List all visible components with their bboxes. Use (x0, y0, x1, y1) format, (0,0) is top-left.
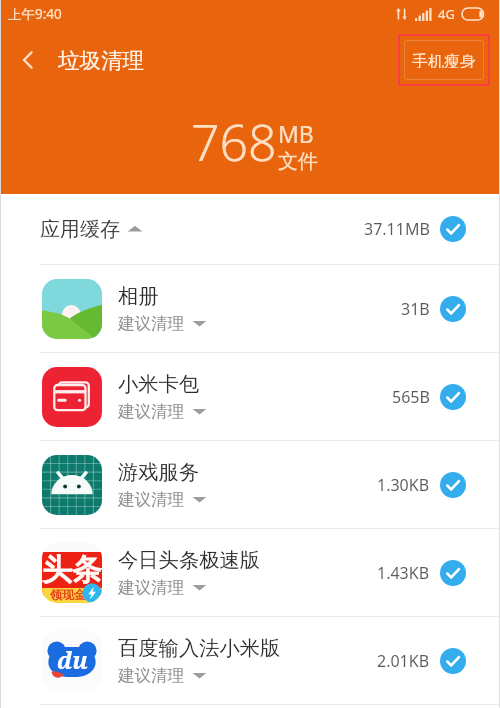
staticText: 头条 (42, 551, 102, 589)
button[interactable]: Selected, tap to deselect (440, 472, 466, 498)
staticText: 768 (191, 108, 277, 176)
staticText: 相册 (118, 283, 159, 309)
staticText: 1.43KB (377, 562, 430, 584)
staticText: 4G (438, 5, 455, 23)
staticText: 建议清理 (118, 577, 184, 598)
staticText: 小米卡包 (118, 371, 200, 397)
staticText: 文件 (278, 149, 318, 174)
staticText: du (57, 644, 88, 675)
staticText: MB (278, 118, 314, 149)
staticText: 百度输入法小米版 (118, 635, 281, 661)
staticText: 应用缓存 (40, 217, 120, 242)
button[interactable]: 应用缓存 (0, 194, 500, 264)
button[interactable]: du (0, 617, 500, 704)
button[interactable]: Back (0, 34, 56, 86)
staticText: 565B (392, 386, 430, 408)
staticText: 1.30KB (377, 474, 430, 496)
button[interactable]: Selected, tap to deselect (440, 296, 466, 322)
button[interactable]: 头条 (0, 529, 500, 616)
staticText: 建议清理 (118, 401, 184, 422)
staticText: 2.01KB (377, 650, 430, 672)
staticText: 今日头条极速版 (118, 547, 261, 573)
staticText: 37.11MB (364, 218, 430, 240)
button[interactable]: Selected, tap to deselect (440, 560, 466, 586)
button[interactable]: Selected, tap to deselect (440, 216, 466, 242)
staticText: 领现金 (50, 587, 86, 602)
staticText: 建议清理 (118, 313, 184, 334)
staticText: 游戏服务 (118, 459, 200, 485)
staticText: 上午9:40 (8, 5, 62, 23)
staticText: 建议清理 (118, 665, 184, 686)
button[interactable]: 小米卡包 (0, 353, 500, 440)
button[interactable]: 手机瘦身 (404, 40, 484, 80)
staticText: 垃圾清理 (58, 47, 144, 74)
button[interactable]: Selected, tap to deselect (440, 648, 466, 674)
button[interactable]: Selected, tap to deselect (440, 384, 466, 410)
staticText: 建议清理 (118, 489, 184, 510)
button[interactable]: 相册 (0, 265, 500, 352)
staticText: 手机瘦身 (412, 52, 476, 68)
button[interactable]: 游戏服务 (0, 441, 500, 528)
staticText: 31B (401, 298, 430, 320)
